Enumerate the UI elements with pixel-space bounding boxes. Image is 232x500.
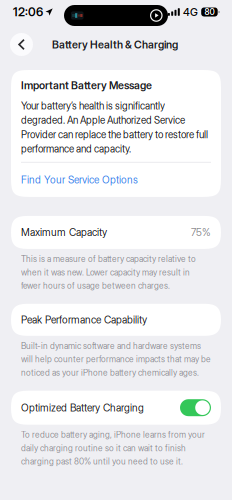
staticText: 12:06	[13, 5, 43, 19]
button[interactable]: Maximum Capacity	[11, 216, 221, 249]
staticText: This is a measure of battery capacity re…	[21, 254, 196, 291]
staticText: Maximum Capacity	[21, 226, 107, 239]
staticText: 80	[204, 7, 214, 17]
staticText: 75%	[191, 226, 211, 239]
staticText: Peak Performance Capability	[21, 314, 147, 326]
button[interactable]: Optimized Battery Charging	[11, 391, 221, 425]
staticText: Your battery’s health is significantly d…	[21, 100, 208, 155]
staticText: Optimized Battery Charging	[21, 402, 144, 414]
button[interactable]: Find Your Service Options	[21, 163, 211, 197]
button[interactable]: Back	[10, 33, 33, 56]
staticText: 4G	[183, 5, 198, 18]
staticText: Important Battery Message	[21, 79, 152, 92]
staticText: Find Your Service Options	[21, 174, 138, 186]
staticText: To reduce battery aging, iPhone learns f…	[21, 430, 205, 467]
button[interactable]: Peak Performance Capability	[11, 304, 221, 336]
staticText: Battery Health & Charging	[52, 38, 178, 51]
staticText: Built-in dynamic software and hardware s…	[21, 341, 211, 378]
